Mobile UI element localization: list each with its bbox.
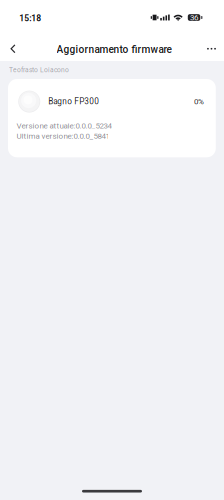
staticText: Ultima versione:0.0.0_5841 <box>16 131 109 141</box>
staticText: Versione attuale:0.0.0_5234 <box>16 121 111 130</box>
staticText: Aggiornamento firmware <box>56 43 171 55</box>
staticText: 0% <box>194 97 204 106</box>
staticText: 36 <box>190 13 198 22</box>
staticText: Bagno FP300 <box>48 97 99 106</box>
button[interactable]: Back <box>2 36 23 62</box>
staticText: Teofrasto Loiacono <box>9 66 69 74</box>
staticText: 15:18 <box>19 13 41 23</box>
button[interactable]: More options <box>200 36 222 62</box>
